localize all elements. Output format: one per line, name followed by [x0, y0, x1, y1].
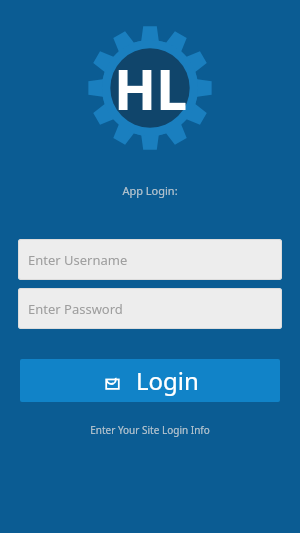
staticText: App Login:: [0, 183, 300, 198]
button[interactable]: Enter Your Site Login Info: [0, 423, 300, 437]
other: Login: [102, 370, 123, 391]
staticText: Enter Password: [28, 300, 123, 318]
staticText: Enter Username: [28, 251, 128, 269]
button[interactable]: Enter Password: [18, 288, 282, 329]
button[interactable]: Login: [20, 359, 280, 402]
staticText: HL: [114, 51, 187, 126]
staticText: Login: [136, 364, 199, 397]
button[interactable]: Enter Username: [18, 239, 282, 280]
